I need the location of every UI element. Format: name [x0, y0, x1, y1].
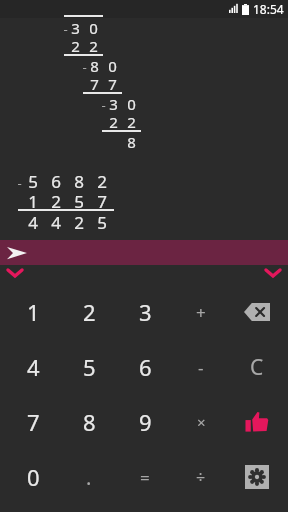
button[interactable]: = — [117, 450, 173, 504]
staticText: 6 — [51, 170, 61, 193]
staticText: 8 — [74, 170, 84, 193]
button[interactable]: 4 — [5, 340, 61, 394]
button[interactable]: - — [173, 340, 229, 394]
other: Cursor — [7, 246, 27, 260]
staticText: 8 — [127, 132, 136, 152]
button[interactable]: Scroll down left — [0, 265, 30, 281]
button[interactable]: × — [173, 395, 229, 449]
button[interactable]: 9 — [117, 395, 173, 449]
staticText: C — [250, 353, 264, 382]
staticText: 5 — [97, 211, 107, 234]
staticText: 0 — [108, 56, 117, 76]
staticText: 7 — [108, 74, 117, 94]
button[interactable]: Settings — [229, 450, 285, 504]
staticText: + — [196, 301, 206, 324]
staticText: 1 — [27, 297, 40, 327]
staticText: = — [140, 466, 150, 489]
staticText: 2 — [89, 36, 98, 56]
button[interactable]: ÷ — [173, 450, 229, 504]
button[interactable]: 5 — [61, 340, 117, 394]
staticText: 6 — [139, 352, 152, 382]
staticText: 2 — [97, 170, 107, 193]
staticText: 2 — [51, 190, 61, 213]
staticText: 2 — [127, 112, 136, 132]
staticText: 3 — [139, 297, 152, 327]
staticText: 5 — [74, 190, 84, 213]
staticText: 1 — [28, 190, 38, 213]
button[interactable]: Backspace — [229, 285, 285, 339]
staticText: 4 — [51, 211, 61, 234]
button[interactable]: C — [229, 340, 285, 394]
staticText: 0 — [89, 18, 98, 38]
button[interactable]: 6 — [117, 340, 173, 394]
button[interactable]: 7 — [5, 395, 61, 449]
staticText: . — [86, 464, 92, 491]
staticText: - — [17, 174, 22, 192]
button[interactable]: Cursor — [0, 240, 288, 265]
button[interactable]: Submit answer — [229, 395, 285, 449]
staticText: 2 — [83, 297, 96, 327]
staticText: - — [101, 96, 106, 114]
staticText: 3 — [109, 94, 118, 114]
staticText: × — [197, 412, 206, 432]
staticText: 3 — [71, 18, 80, 38]
staticText: 2 — [74, 211, 84, 234]
staticText: 4 — [28, 211, 38, 234]
button[interactable]: 1 — [5, 285, 61, 339]
staticText: - — [198, 356, 204, 379]
staticText: 7 — [27, 407, 40, 437]
staticText: 8 — [83, 407, 96, 437]
staticText: 5 — [28, 170, 38, 193]
button[interactable]: Scroll down right — [258, 265, 288, 281]
staticText: 9 — [139, 407, 152, 437]
button[interactable]: . — [61, 450, 117, 504]
staticText: 7 — [97, 190, 107, 213]
staticText: 8 — [90, 56, 99, 76]
staticText: - — [82, 58, 87, 76]
button[interactable]: 0 — [5, 450, 61, 504]
button[interactable]: 2 — [61, 285, 117, 339]
button[interactable]: + — [173, 285, 229, 339]
staticText: 5 — [83, 352, 96, 382]
button[interactable]: 8 — [61, 395, 117, 449]
staticText: 0 — [127, 94, 136, 114]
staticText: 2 — [71, 36, 80, 56]
staticText: 2 — [109, 112, 118, 132]
staticText: ÷ — [196, 466, 206, 488]
staticText: - — [63, 20, 68, 38]
button[interactable]: 3 — [117, 285, 173, 339]
staticText: 0 — [27, 462, 40, 492]
staticText: 4 — [27, 352, 40, 382]
staticText: 7 — [90, 74, 99, 94]
staticText: 18:54 — [253, 1, 284, 17]
